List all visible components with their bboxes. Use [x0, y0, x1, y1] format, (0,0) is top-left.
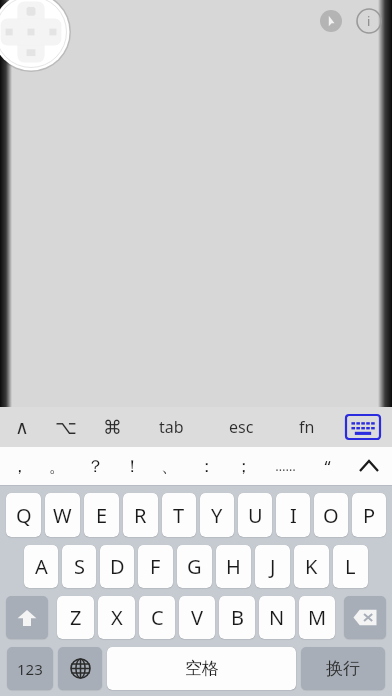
button[interactable]: E [84, 493, 119, 537]
staticText: B [231, 604, 244, 631]
staticText: H [226, 553, 241, 580]
staticText: 。 [49, 456, 66, 477]
button[interactable]: esc [206, 407, 276, 447]
button[interactable]: D [100, 545, 134, 588]
button[interactable]: P [352, 493, 386, 537]
button[interactable]: L [333, 545, 368, 588]
staticText: Y [211, 502, 223, 529]
button[interactable]: ⌥ [44, 407, 88, 447]
staticText: T [173, 502, 185, 529]
button[interactable]: …… [262, 447, 309, 485]
button[interactable]: O [314, 493, 348, 537]
staticText: …… [275, 457, 296, 475]
staticText: ？ [87, 456, 104, 477]
button[interactable]: Z [57, 596, 94, 639]
staticText: 空格 [185, 658, 219, 679]
button[interactable]: Switch language [58, 647, 102, 690]
staticText: A [35, 553, 48, 580]
button[interactable]: 空格 [107, 647, 296, 690]
staticText: tab [159, 416, 184, 438]
staticText: fn [299, 416, 315, 438]
staticText: M [308, 604, 327, 631]
button[interactable]: S [62, 545, 96, 588]
staticText: Z [70, 604, 82, 631]
button[interactable]: ； [225, 447, 262, 485]
staticText: ， [11, 456, 28, 477]
staticText: W [53, 502, 72, 529]
button[interactable]: T [162, 493, 196, 537]
button[interactable]: M [299, 596, 335, 639]
staticText: ⌘ [103, 416, 122, 438]
button[interactable]: Q [6, 493, 41, 537]
button[interactable]: N [259, 596, 295, 639]
staticText: ； [235, 456, 252, 477]
staticText: 换行 [326, 658, 360, 679]
staticText: R [134, 502, 147, 529]
button[interactable]: B [219, 596, 255, 639]
staticText: J [270, 553, 276, 580]
button[interactable]: ？ [76, 447, 114, 485]
button[interactable]: J [255, 545, 290, 588]
staticText: “ [324, 455, 331, 478]
button[interactable]: 。 [38, 447, 76, 485]
staticText: I [290, 502, 297, 529]
button[interactable]: ∧ [0, 407, 44, 447]
staticText: O [323, 502, 339, 529]
staticText: N [269, 604, 285, 631]
button[interactable]: A [24, 545, 58, 588]
staticText: F [150, 553, 161, 580]
button[interactable]: U [238, 493, 272, 537]
button[interactable]: tab [136, 407, 206, 447]
button[interactable]: G [177, 545, 212, 588]
staticText: D [110, 553, 125, 580]
button[interactable]: Shift [6, 596, 48, 639]
button[interactable]: “ [309, 447, 346, 485]
staticText: K [305, 553, 318, 580]
staticText: 123 [17, 659, 43, 679]
staticText: S [74, 553, 85, 580]
staticText: ⌥ [55, 416, 77, 438]
button[interactable]: Collapse [346, 447, 392, 485]
button[interactable]: Delete [344, 596, 386, 639]
button[interactable]: W [45, 493, 80, 537]
button[interactable]: ！ [114, 447, 151, 485]
staticText: C [151, 604, 164, 631]
staticText: ！ [124, 456, 141, 477]
staticText: P [363, 502, 376, 529]
staticText: esc [229, 416, 254, 438]
staticText: L [345, 553, 356, 580]
button[interactable]: I [276, 493, 310, 537]
button[interactable]: fn [276, 407, 338, 447]
button[interactable]: K [294, 545, 329, 588]
button[interactable]: F [138, 545, 173, 588]
button[interactable]: 换行 [301, 647, 385, 690]
button[interactable]: Media controls [0, 0, 71, 72]
button[interactable]: C [139, 596, 175, 639]
staticText: ∧ [15, 416, 29, 438]
staticText: Q [16, 502, 32, 529]
button[interactable]: V [179, 596, 215, 639]
button[interactable]: R [123, 493, 158, 537]
staticText: i [367, 12, 371, 30]
staticText: ： [198, 456, 215, 477]
button[interactable]: 、 [151, 447, 188, 485]
staticText: X [111, 604, 123, 631]
button[interactable]: ： [188, 447, 225, 485]
button[interactable]: X [98, 596, 135, 639]
button[interactable]: H [216, 545, 251, 588]
button[interactable]: Hide keyboard [346, 415, 380, 439]
staticText: U [248, 502, 263, 529]
staticText: E [96, 502, 108, 529]
button[interactable]: Info [356, 8, 382, 34]
button[interactable]: ⌘ [88, 407, 136, 447]
staticText: V [191, 604, 203, 631]
button[interactable]: Y [200, 493, 234, 537]
button[interactable]: Pointer [320, 10, 342, 32]
staticText: 、 [161, 456, 178, 477]
staticText: G [187, 553, 202, 580]
button[interactable]: ， [0, 447, 38, 485]
button[interactable]: 123 [7, 647, 53, 690]
